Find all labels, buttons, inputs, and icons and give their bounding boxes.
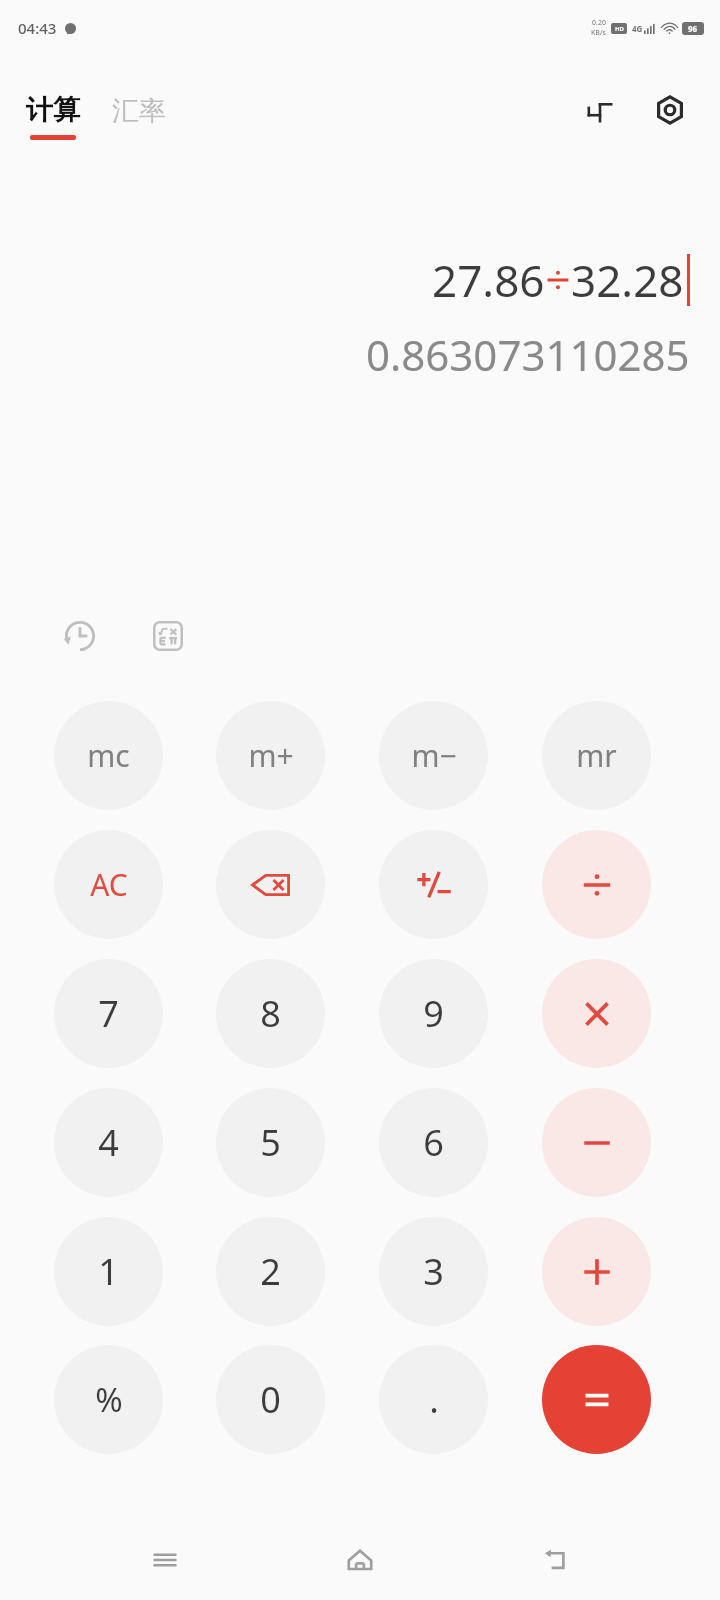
button[interactable]: 2 (216, 1217, 325, 1326)
staticText: 04:43 (18, 18, 57, 38)
button[interactable]: 6 (379, 1088, 488, 1197)
staticText: 27.86 (432, 250, 545, 310)
button[interactable]: AC (54, 830, 163, 939)
staticText: 1 (98, 1247, 119, 1296)
staticText: KB/s (591, 28, 606, 38)
button[interactable]: Back (525, 1530, 585, 1590)
button[interactable]: 9 (379, 959, 488, 1068)
staticText: 5 (260, 1118, 281, 1167)
button[interactable]: . (379, 1345, 488, 1454)
button[interactable]: 0 (216, 1345, 325, 1454)
staticText: mr (576, 735, 617, 776)
staticText: 4G (632, 23, 643, 34)
staticText: . (429, 1375, 439, 1424)
button[interactable]: Recents (135, 1530, 195, 1590)
button[interactable]: Plus minus (379, 830, 488, 939)
button[interactable]: 8 (216, 959, 325, 1068)
staticText: 2 (260, 1247, 281, 1296)
staticText: 0 (260, 1375, 281, 1424)
staticText: m+ (248, 735, 294, 776)
button[interactable]: Unit conversion (576, 86, 624, 134)
staticText: 汇率 (112, 94, 166, 128)
button[interactable]: Divide (542, 830, 651, 939)
button[interactable]: 1 (54, 1217, 163, 1326)
button[interactable]: 7 (54, 959, 163, 1068)
button[interactable]: m− (379, 701, 488, 810)
staticText: 3 (423, 1247, 444, 1296)
staticText: AC (90, 864, 128, 905)
button[interactable]: Backspace (216, 830, 325, 939)
button[interactable]: Equals (542, 1345, 651, 1454)
staticText: 6 (423, 1118, 444, 1167)
button[interactable]: Minus (542, 1088, 651, 1197)
button[interactable]: 3 (379, 1217, 488, 1326)
staticText: HD (615, 25, 624, 33)
button[interactable]: Home (330, 1530, 390, 1590)
button[interactable]: 汇率 (110, 100, 168, 134)
staticText: 9 (423, 989, 444, 1038)
button[interactable]: Scientific mode (140, 608, 196, 664)
button[interactable]: mr (542, 701, 651, 810)
staticText: mc (87, 735, 130, 776)
button[interactable]: History (52, 608, 108, 664)
staticText: 32.28 (571, 250, 684, 310)
staticText: 0.863073110285 (366, 326, 690, 383)
button[interactable]: m+ (216, 701, 325, 810)
button[interactable]: Settings (646, 86, 694, 134)
button[interactable]: Multiply (542, 959, 651, 1068)
staticText: 7 (98, 989, 119, 1038)
staticText: 计算 (26, 93, 80, 127)
button[interactable]: 5 (216, 1088, 325, 1197)
staticText: 0.20 (592, 18, 606, 28)
button[interactable]: mc (54, 701, 163, 810)
staticText: 8 (260, 989, 281, 1038)
button[interactable]: 计算 (24, 93, 82, 140)
button[interactable]: % (54, 1345, 163, 1454)
button[interactable]: 4 (54, 1088, 163, 1197)
staticText: m− (411, 735, 457, 776)
staticText: % (95, 1377, 123, 1422)
staticText: 4 (98, 1118, 119, 1167)
button[interactable]: Plus (542, 1217, 651, 1326)
staticText: 96 (688, 23, 698, 34)
